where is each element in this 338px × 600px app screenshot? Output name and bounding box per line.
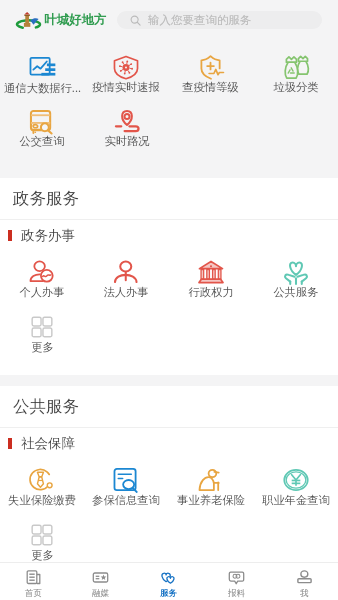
other: 报料 <box>229 570 244 585</box>
button[interactable]: 报料 <box>202 563 270 600</box>
button[interactable]: 事业养老保险 <box>168 468 253 507</box>
staticText: 行政权力 <box>188 285 234 299</box>
button[interactable]: 更多 <box>0 315 84 354</box>
button[interactable]: 服务 <box>134 563 202 600</box>
staticText: 融媒 <box>92 588 109 599</box>
staticText: 叶城好地方 <box>44 12 107 28</box>
staticText: 公共服务 <box>13 396 79 417</box>
staticText: 通信大数据行... <box>4 80 81 95</box>
button[interactable]: 公交查询 <box>0 109 84 148</box>
staticText: 报料 <box>228 588 245 599</box>
other: 我 <box>297 570 312 585</box>
staticText: 更多 <box>31 340 54 354</box>
staticText: 参保信息查询 <box>92 493 160 507</box>
staticText: 职业年金查询 <box>262 493 330 507</box>
other: 服务 <box>161 570 176 585</box>
staticText: 疫情实时速报 <box>92 80 160 94</box>
staticText: 服务 <box>160 588 177 599</box>
staticText: 社会保障 <box>21 435 75 452</box>
staticText: 查疫情等级 <box>182 80 239 94</box>
button[interactable]: 失业保险缴费 <box>0 468 84 507</box>
other: Logo <box>17 11 40 29</box>
button[interactable]: 个人办事 <box>0 260 84 299</box>
staticText: 我 <box>300 588 309 599</box>
staticText: 公交查询 <box>19 134 65 148</box>
staticText: 实时路况 <box>104 134 150 148</box>
staticText: 个人办事 <box>19 285 65 299</box>
staticText: 政务服务 <box>13 188 79 209</box>
button[interactable]: 我 <box>270 563 338 600</box>
other: 融媒 <box>93 570 108 585</box>
staticText: 更多 <box>31 548 54 562</box>
button[interactable]: 参保信息查询 <box>84 468 168 507</box>
other: 首页 <box>26 570 41 585</box>
button[interactable]: 疫情实时速报 <box>84 55 168 94</box>
staticText: 事业养老保险 <box>177 493 245 507</box>
button[interactable]: 行政权力 <box>168 260 253 299</box>
button[interactable]: 查疫情等级 <box>168 55 253 94</box>
button[interactable]: 通信大数据行... <box>0 55 84 95</box>
staticText: 法人办事 <box>103 285 149 299</box>
staticText: 公共服务 <box>273 285 319 299</box>
button[interactable]: 实时路况 <box>84 109 169 148</box>
button[interactable]: 更多 <box>0 523 84 562</box>
button[interactable]: 垃圾分类 <box>253 55 338 94</box>
button[interactable]: 法人办事 <box>84 260 168 299</box>
staticText: 垃圾分类 <box>273 80 319 94</box>
button[interactable]: 输入您要查询的服务 <box>117 11 322 29</box>
staticText: 输入您要查询的服务 <box>148 13 252 27</box>
staticText: 首页 <box>25 588 42 599</box>
button[interactable]: 公共服务 <box>253 260 338 299</box>
button[interactable]: 职业年金查询 <box>253 468 338 507</box>
staticText: 失业保险缴费 <box>8 493 76 507</box>
staticText: 政务办事 <box>21 227 75 244</box>
button[interactable]: 融媒 <box>67 563 134 600</box>
button[interactable]: 首页 <box>0 563 67 600</box>
